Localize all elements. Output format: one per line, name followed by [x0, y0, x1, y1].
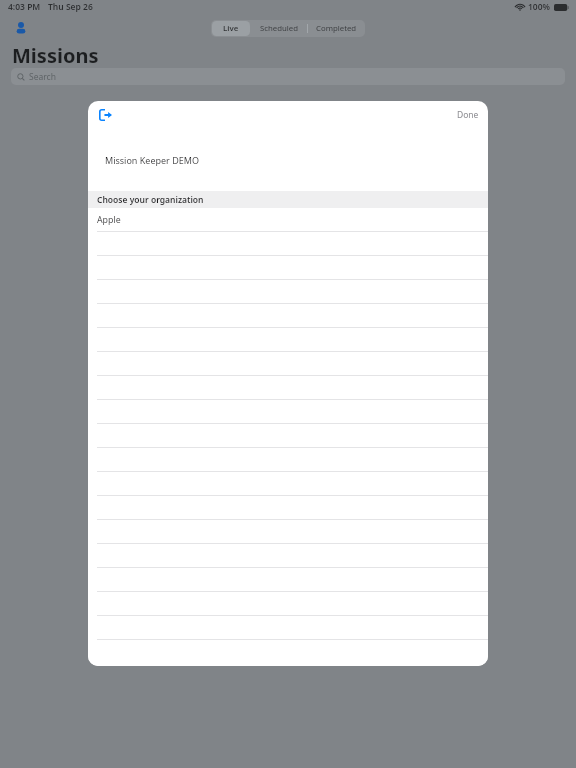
staticText: Missions — [12, 42, 99, 68]
button[interactable]: Completed — [308, 20, 365, 37]
button[interactable]: Done — [448, 105, 488, 125]
staticText: Search — [29, 71, 56, 83]
staticText: Completed — [316, 23, 357, 34]
staticText: Thu Sep 26 — [48, 1, 93, 13]
staticText: Live — [223, 23, 239, 34]
staticText: 4:03 PM — [8, 1, 41, 13]
button[interactable]: Sign out — [94, 104, 116, 126]
staticText: Scheduled — [260, 23, 299, 34]
staticText: 100% — [528, 1, 551, 13]
staticText: Choose your organization — [97, 194, 204, 206]
staticText: Done — [457, 109, 479, 121]
button[interactable]: Live — [212, 21, 250, 36]
button[interactable]: Account — [10, 17, 32, 39]
staticText: Mission Keeper DEMO — [105, 154, 199, 166]
button[interactable]: Scheduled — [252, 20, 307, 37]
button[interactable]: Apple — [88, 208, 488, 231]
staticText: Apple — [97, 214, 121, 226]
